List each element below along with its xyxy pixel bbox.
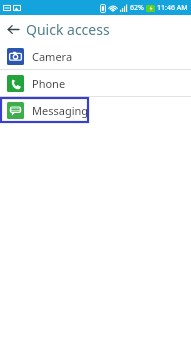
staticText: 11:46 AM [157, 3, 188, 13]
button[interactable]: Phone [0, 70, 191, 96]
button[interactable]: Messaging [0, 97, 191, 123]
button[interactable]: Camera [0, 43, 191, 69]
staticText: Messaging [32, 103, 89, 118]
staticText: Camera [32, 49, 73, 64]
staticText: Phone [32, 76, 66, 91]
button[interactable]: Back [0, 16, 26, 42]
staticText: 62% [130, 3, 144, 13]
staticText: Quick access [26, 20, 110, 39]
